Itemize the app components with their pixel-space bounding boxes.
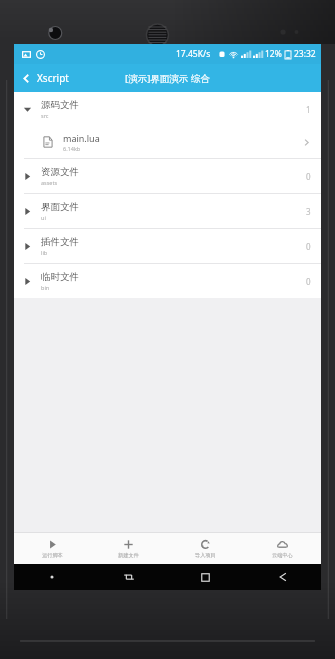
button[interactable]: 插件文件 bbox=[14, 229, 321, 263]
button[interactable]: Home bbox=[167, 564, 244, 590]
staticText: 3 bbox=[306, 206, 311, 217]
staticText: ui bbox=[41, 214, 46, 221]
staticText: 0 bbox=[306, 241, 311, 252]
button[interactable]: 资源文件 bbox=[14, 159, 321, 193]
staticText: 6.14kb bbox=[63, 145, 81, 152]
staticText: 0 bbox=[306, 276, 311, 287]
staticText: src bbox=[41, 112, 49, 119]
staticText: 0 bbox=[306, 171, 311, 182]
staticText: Xscript bbox=[37, 71, 69, 85]
staticText: 1 bbox=[306, 104, 311, 115]
button[interactable]: Switch bbox=[90, 564, 167, 590]
staticText: [演示]界面演示 综合 bbox=[125, 72, 210, 85]
staticText: main.lua bbox=[63, 132, 100, 144]
staticText: 界面文件 bbox=[41, 201, 79, 213]
staticText: 23:32 bbox=[294, 48, 316, 60]
button[interactable]: 运行脚本 bbox=[14, 533, 90, 564]
button[interactable]: Back bbox=[244, 564, 321, 590]
staticText: 运行脚本 bbox=[42, 552, 63, 559]
button[interactable]: 源码文件 bbox=[14, 92, 321, 126]
button[interactable]: 新建文件 bbox=[90, 533, 167, 564]
button[interactable]: Xscript bbox=[14, 64, 79, 92]
staticText: lib bbox=[41, 249, 48, 256]
staticText: assets bbox=[41, 179, 58, 186]
staticText: 导入项目 bbox=[195, 552, 216, 559]
staticText: 资源文件 bbox=[41, 166, 79, 178]
staticText: 临时文件 bbox=[41, 271, 79, 283]
staticText: 12% bbox=[265, 48, 282, 60]
button[interactable]: 云端中心 bbox=[244, 533, 321, 564]
staticText: 插件文件 bbox=[41, 236, 79, 248]
staticText: 源码文件 bbox=[41, 99, 79, 111]
button[interactable]: main.lua bbox=[14, 126, 321, 158]
staticText: bin bbox=[41, 284, 50, 291]
button[interactable]: 导入项目 bbox=[167, 533, 244, 564]
staticText: 新建文件 bbox=[118, 552, 139, 559]
button[interactable]: 临时文件 bbox=[14, 264, 321, 298]
staticText: 云端中心 bbox=[272, 552, 293, 559]
staticText: 17.45K/s bbox=[176, 48, 211, 60]
button[interactable]: 界面文件 bbox=[14, 194, 321, 228]
